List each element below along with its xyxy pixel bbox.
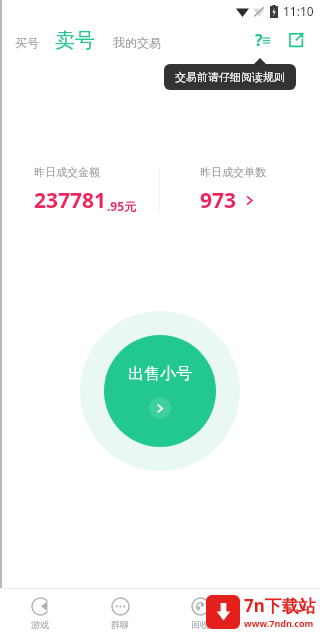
button[interactable]: 我的交易 xyxy=(110,32,164,53)
staticText: 昨日成交单数 xyxy=(200,165,266,179)
staticText: 昨日成交金额 xyxy=(34,165,100,179)
staticText: 我的交易 xyxy=(113,35,161,50)
button[interactable]: 昨日成交单数 xyxy=(160,159,320,221)
staticText: 973 xyxy=(200,186,237,215)
button[interactable]: 出售小号 xyxy=(104,335,216,447)
staticText: ? xyxy=(255,29,263,51)
staticText: 游戏 xyxy=(31,619,49,630)
button[interactable]: 交易前请仔细阅读规则 xyxy=(164,64,296,90)
button[interactable]: Rules xyxy=(250,28,274,52)
staticText: 卖号 xyxy=(55,28,95,53)
staticText: 群聊 xyxy=(111,619,129,630)
staticText: 买号 xyxy=(15,35,39,50)
staticText: 237781 xyxy=(34,186,107,215)
staticText: 11:10 xyxy=(283,3,314,19)
staticText: 7n下载站 xyxy=(244,594,316,617)
button[interactable]: 回收 xyxy=(160,589,240,637)
button[interactable]: 群聊 xyxy=(80,589,160,637)
staticText: 回收 xyxy=(191,619,209,630)
button[interactable]: 游戏 xyxy=(0,589,80,637)
staticText: .95元 xyxy=(107,198,137,214)
staticText: 交易前请仔细阅读规则 xyxy=(175,70,285,84)
staticText: 出售小号 xyxy=(128,364,192,384)
button[interactable]: 昨日成交金额 xyxy=(0,159,159,221)
staticText: www.7ndn.com xyxy=(244,617,314,629)
button[interactable]: 买号 xyxy=(12,32,42,53)
button[interactable]: Share xyxy=(284,28,308,52)
button[interactable]: 卖号 xyxy=(52,28,98,53)
